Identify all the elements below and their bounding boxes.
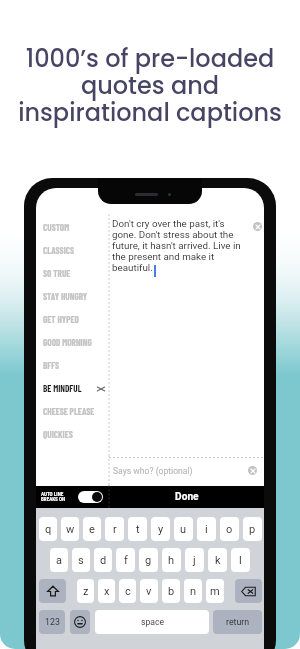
staticText: Says who? (optional)	[113, 466, 193, 476]
button[interactable]: d	[94, 548, 112, 572]
button[interactable]: m	[206, 579, 224, 603]
button[interactable]: w	[61, 517, 79, 541]
staticText: Don't cry over the past, it's gone. Don'…	[112, 218, 247, 273]
button[interactable]: GET HYPED	[43, 308, 105, 331]
button[interactable]: i	[197, 517, 216, 541]
button[interactable]: v	[140, 579, 158, 603]
staticText: GOOD MORNING	[43, 337, 92, 348]
staticText: CHEESE PLEASE	[43, 406, 95, 417]
staticText: j	[193, 554, 196, 567]
button[interactable]: space	[95, 610, 209, 634]
button[interactable]: STAY HUNGRY	[43, 285, 105, 308]
staticText: SO TRUE	[43, 268, 71, 279]
staticText: QUICKIES	[43, 429, 73, 440]
button[interactable]: CUSTOM	[43, 216, 105, 239]
button[interactable]: b	[162, 579, 180, 603]
staticText: a	[56, 554, 62, 567]
button[interactable]: Emoji keyboard	[70, 610, 90, 634]
staticText: f	[124, 554, 128, 567]
staticText: c	[125, 585, 131, 598]
button[interactable]: Clear author	[248, 466, 257, 475]
staticText: 123	[45, 617, 60, 627]
staticText: h	[168, 554, 175, 567]
button[interactable]: s	[72, 548, 90, 572]
button[interactable]: CLASSICS	[43, 239, 105, 262]
button[interactable]: BFFS	[43, 354, 105, 377]
button[interactable]: k	[208, 548, 227, 572]
button[interactable]: BE MINDFUL	[43, 377, 105, 400]
staticText: k	[215, 554, 221, 567]
staticText: i	[205, 523, 208, 536]
button[interactable]: p	[243, 517, 262, 541]
staticText: b	[168, 585, 175, 598]
staticText: d	[100, 554, 107, 567]
staticText: e	[89, 523, 95, 536]
staticText: CUSTOM	[43, 222, 70, 233]
staticText: m	[210, 585, 220, 598]
button[interactable]: Clear quote	[253, 222, 262, 231]
staticText: x	[104, 585, 110, 598]
staticText: CLASSICS	[43, 245, 75, 256]
staticText: v	[146, 585, 152, 598]
button[interactable]: QUICKIES	[43, 423, 105, 446]
button[interactable]: 123	[39, 610, 65, 634]
button[interactable]: t	[128, 517, 147, 541]
button[interactable]: SO TRUE	[43, 262, 105, 285]
staticText: return	[226, 617, 250, 627]
staticText: s	[78, 554, 84, 567]
button[interactable]: return	[213, 610, 262, 634]
button[interactable]: r	[105, 517, 124, 541]
button[interactable]: Done	[109, 486, 264, 508]
staticText: space	[141, 617, 164, 627]
staticText: w	[66, 523, 75, 536]
button[interactable]: n	[184, 579, 202, 603]
button[interactable]: l	[231, 548, 250, 572]
button[interactable]: h	[162, 548, 181, 572]
staticText: n	[190, 585, 197, 598]
staticText: BFFS	[43, 360, 60, 371]
staticText: AUTO LINE BREAKS ON	[41, 491, 66, 503]
button[interactable]: Backspace	[235, 579, 262, 603]
button[interactable]: q	[39, 517, 57, 541]
button[interactable]: CHEESE PLEASE	[43, 400, 105, 423]
staticText: g	[145, 554, 152, 567]
button[interactable]: GOOD MORNING	[43, 331, 105, 354]
staticText: o	[226, 523, 233, 536]
button[interactable]: u	[174, 517, 193, 541]
button[interactable]: e	[83, 517, 101, 541]
staticText: q	[45, 523, 52, 536]
staticText: z	[83, 585, 89, 598]
staticText: r	[113, 523, 117, 536]
staticText: u	[180, 523, 187, 536]
staticText: GET HYPED	[43, 314, 79, 325]
staticText: l	[239, 554, 242, 567]
button[interactable]: x	[98, 579, 115, 603]
staticText: y	[158, 523, 164, 536]
staticText: Done	[175, 491, 199, 503]
button[interactable]: y	[151, 517, 170, 541]
staticText: STAY HUNGRY	[43, 291, 88, 302]
staticText: BE MINDFUL	[43, 383, 82, 394]
staticText: p	[249, 523, 256, 536]
button[interactable]: j	[185, 548, 204, 572]
staticText: 1000’s of pre-loaded quotes and inspirat…	[0, 42, 300, 129]
button[interactable]: f	[116, 548, 135, 572]
button[interactable]: o	[220, 517, 239, 541]
button[interactable]: g	[139, 548, 158, 572]
staticText: t	[136, 523, 140, 536]
button[interactable]: c	[119, 579, 136, 603]
button[interactable]: z	[77, 579, 94, 603]
button[interactable]: Shift	[39, 579, 66, 603]
button[interactable]: a	[50, 548, 68, 572]
button[interactable]: AUTO LINE BREAKS ON	[41, 486, 103, 508]
